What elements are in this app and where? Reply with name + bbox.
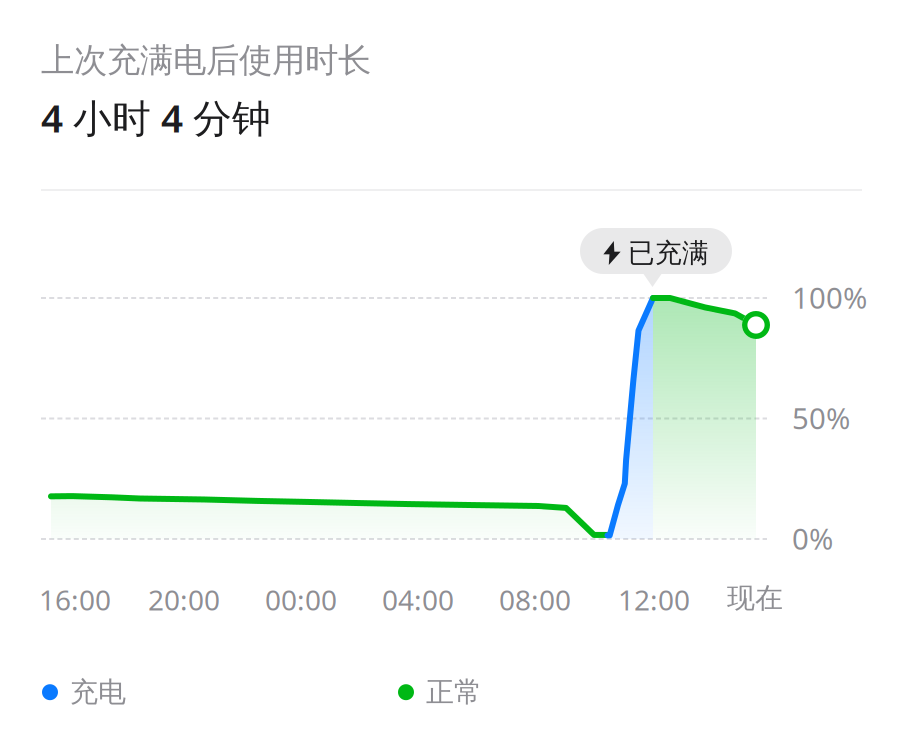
staticText: 20:00 bbox=[148, 581, 220, 618]
staticText: 12:00 bbox=[618, 581, 690, 618]
staticText: 充电 bbox=[70, 675, 126, 709]
staticText: 现在 bbox=[727, 581, 783, 615]
staticText: 50% bbox=[792, 398, 850, 437]
staticText: 4 小时 4 分钟 bbox=[41, 92, 271, 143]
staticText: 已充满 bbox=[628, 237, 709, 269]
staticText: 00:00 bbox=[265, 581, 337, 618]
staticText: 上次充满电后使用时长 bbox=[41, 40, 371, 81]
staticText: 正常 bbox=[426, 675, 482, 709]
staticText: 04:00 bbox=[382, 581, 454, 618]
staticText: 16:00 bbox=[39, 581, 111, 618]
staticText: 0% bbox=[792, 519, 833, 558]
staticText: 100% bbox=[792, 278, 867, 317]
staticText: 08:00 bbox=[499, 581, 571, 618]
